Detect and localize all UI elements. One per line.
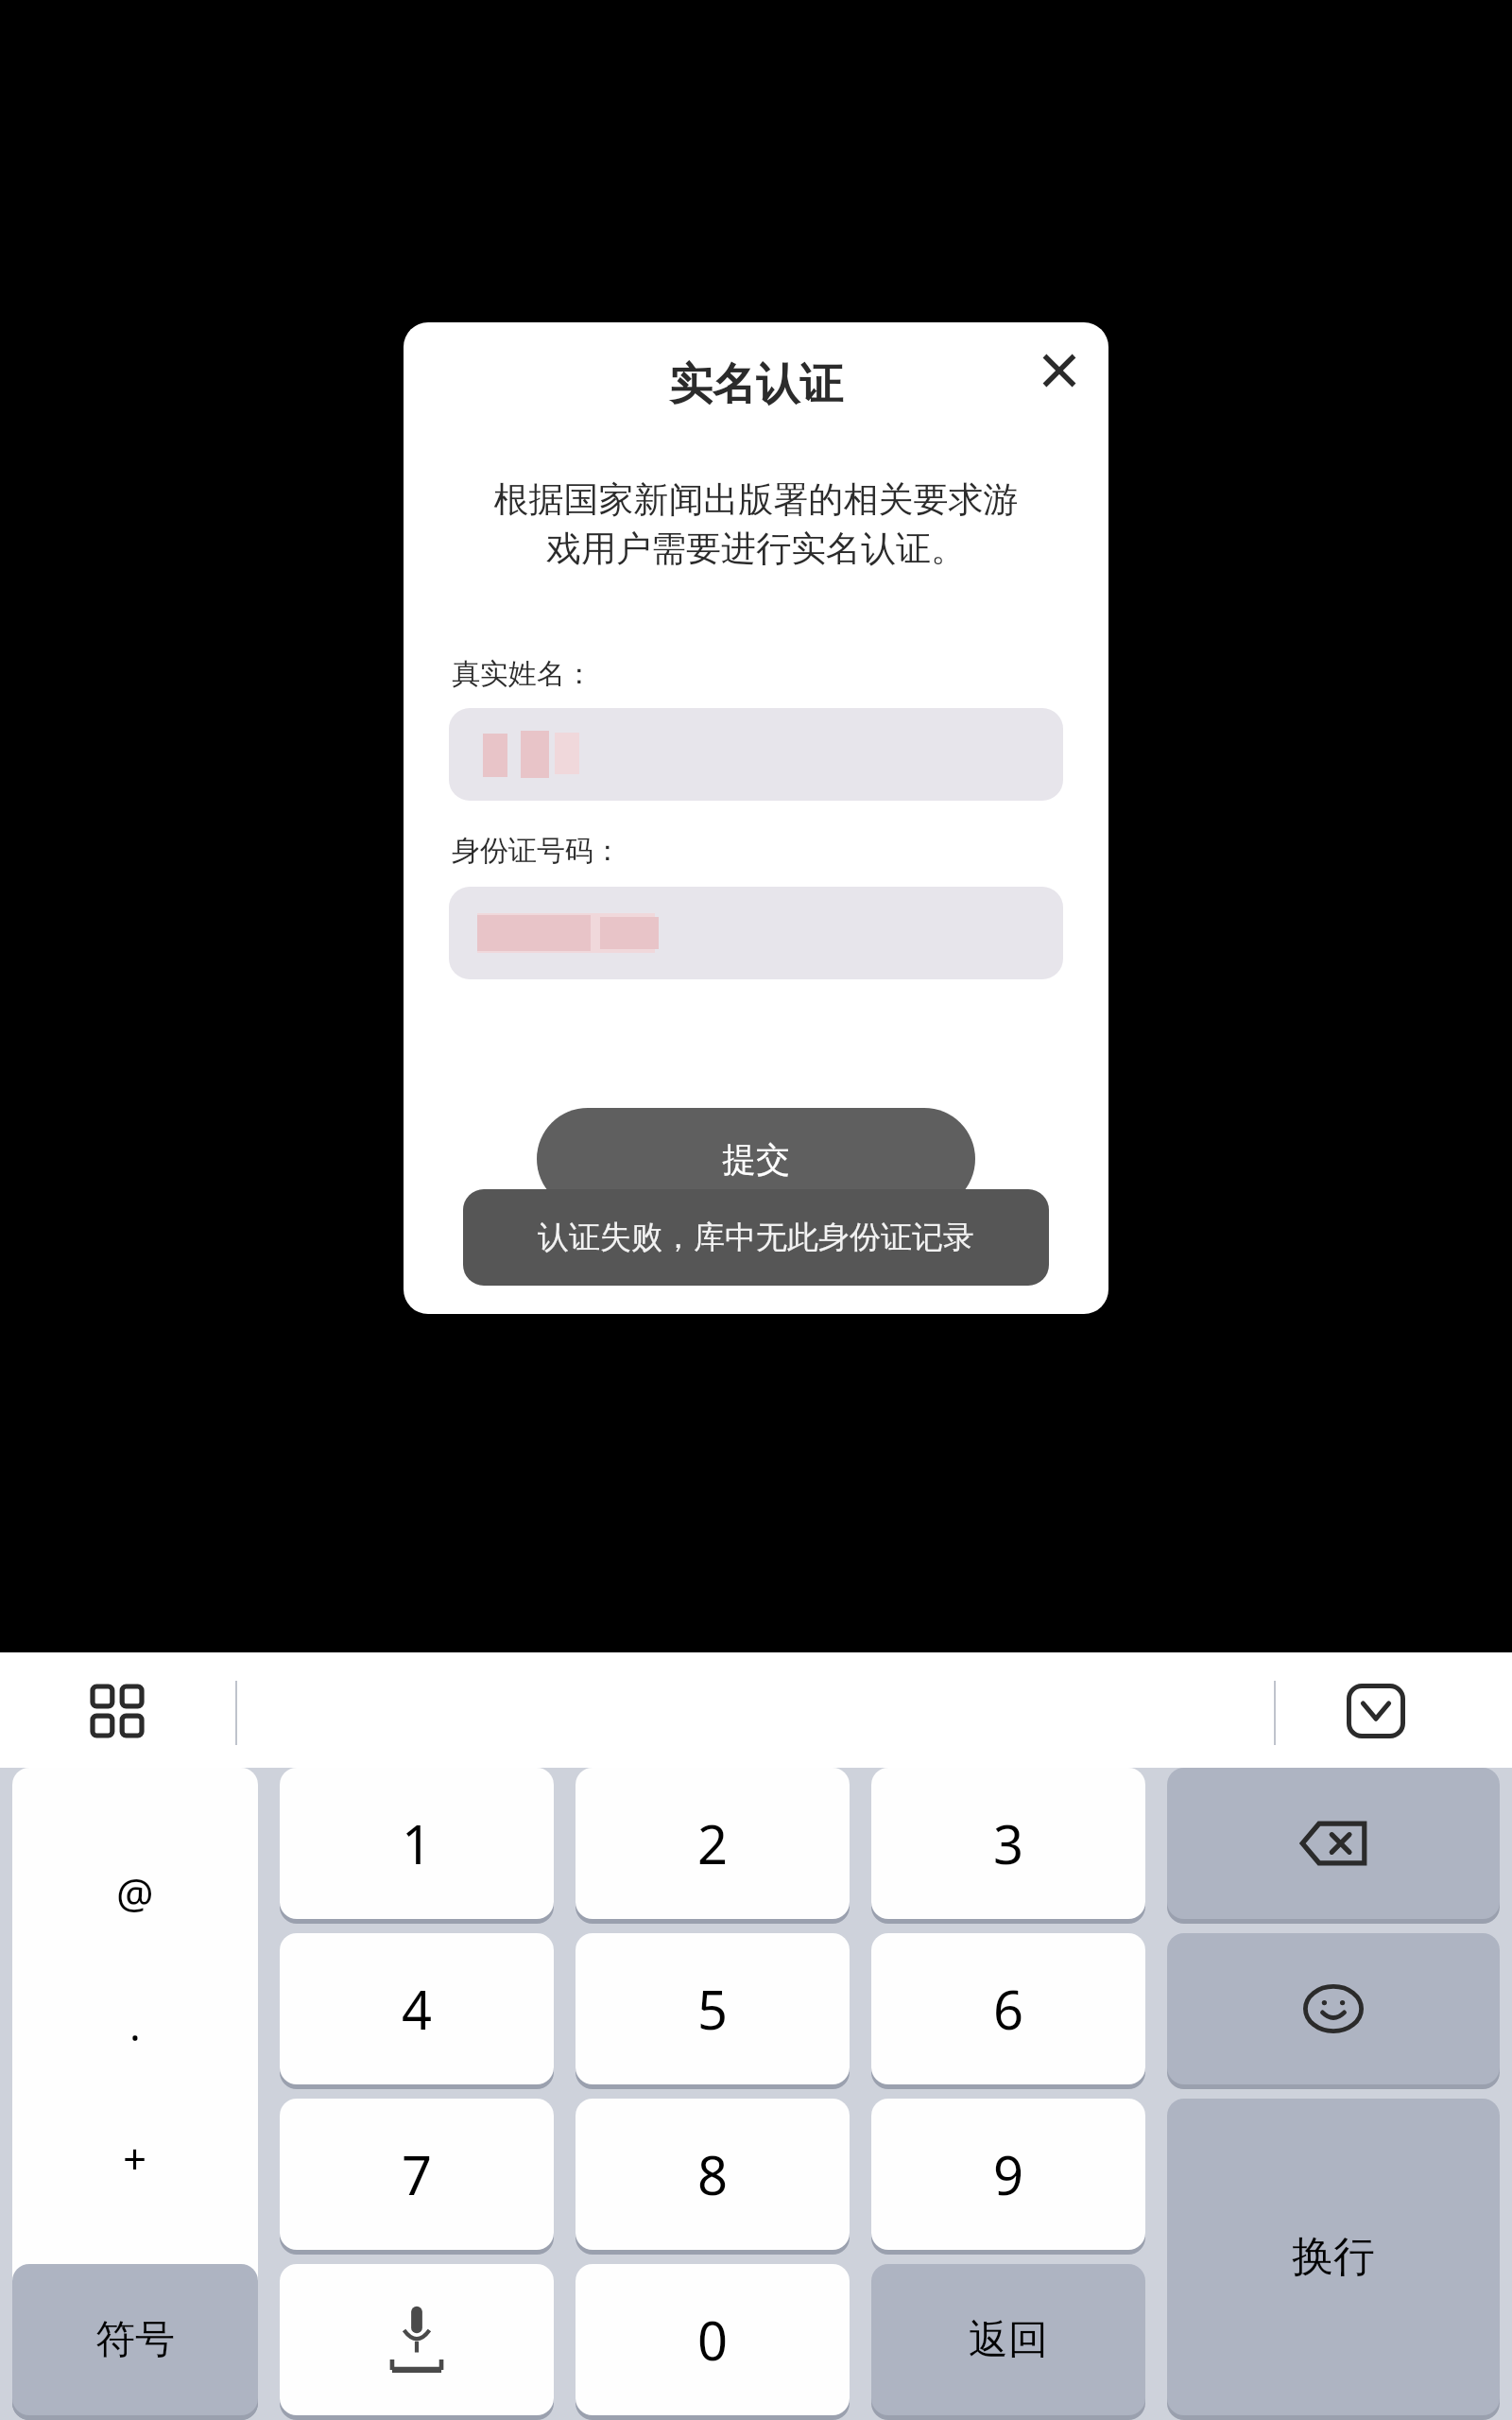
- staticText: @: [116, 1864, 154, 1921]
- staticText: 符号: [95, 2315, 175, 2365]
- button[interactable]: Backspace: [1167, 1768, 1500, 1919]
- staticText: 2: [697, 1807, 729, 1879]
- button[interactable]: Emoji: [1167, 1933, 1500, 2084]
- button[interactable]: Voice input and space: [280, 2264, 554, 2415]
- staticText: -: [129, 2262, 143, 2319]
- button[interactable]: 0: [576, 2264, 850, 2415]
- staticText: 4: [402, 1973, 433, 2045]
- staticText: 返回: [969, 2315, 1048, 2365]
- staticText: .: [129, 1996, 141, 2053]
- staticText: 根据国家新闻出版署的相关要求游 戏用户需要进行实名认证。: [462, 477, 1050, 571]
- button[interactable]: 返回: [871, 2264, 1145, 2415]
- button[interactable]: 5: [576, 1933, 850, 2084]
- staticText: 6: [993, 1973, 1024, 2045]
- staticText: 提交: [722, 1138, 790, 1181]
- button[interactable]: 2: [576, 1768, 850, 1919]
- button[interactable]: [449, 887, 1063, 979]
- staticText: 7: [402, 2138, 433, 2210]
- button[interactable]: 8: [576, 2099, 850, 2250]
- button[interactable]: Close: [1027, 338, 1091, 403]
- staticText: 实名认证: [669, 357, 843, 412]
- staticText: 0: [697, 2304, 729, 2376]
- button[interactable]: 9: [871, 2099, 1145, 2250]
- button[interactable]: 3: [871, 1768, 1145, 1919]
- button[interactable]: Keyboard switcher: [79, 1673, 155, 1749]
- staticText: 3: [993, 1807, 1024, 1879]
- button[interactable]: 提交: [537, 1108, 975, 1210]
- staticText: +: [123, 2130, 147, 2187]
- button[interactable]: 6: [871, 1933, 1145, 2084]
- button[interactable]: [449, 708, 1063, 801]
- staticText: 真实姓名：: [452, 656, 593, 692]
- button[interactable]: 7: [280, 2099, 554, 2250]
- button[interactable]: Symbols column: [12, 1768, 258, 2415]
- button[interactable]: 4: [280, 1933, 554, 2084]
- staticText: 认证失败，库中无此身份证记录: [538, 1218, 974, 1257]
- staticText: 8: [697, 2138, 729, 2210]
- button[interactable]: 符号: [12, 2264, 258, 2415]
- staticText: 1: [402, 1807, 433, 1879]
- staticText: 9: [993, 2138, 1024, 2210]
- button[interactable]: Hide keyboard: [1334, 1671, 1417, 1751]
- staticText: 5: [697, 1973, 729, 2045]
- button[interactable]: 1: [280, 1768, 554, 1919]
- button[interactable]: 换行: [1167, 2099, 1500, 2415]
- staticText: 换行: [1292, 2231, 1375, 2283]
- staticText: 身份证号码：: [452, 833, 622, 869]
